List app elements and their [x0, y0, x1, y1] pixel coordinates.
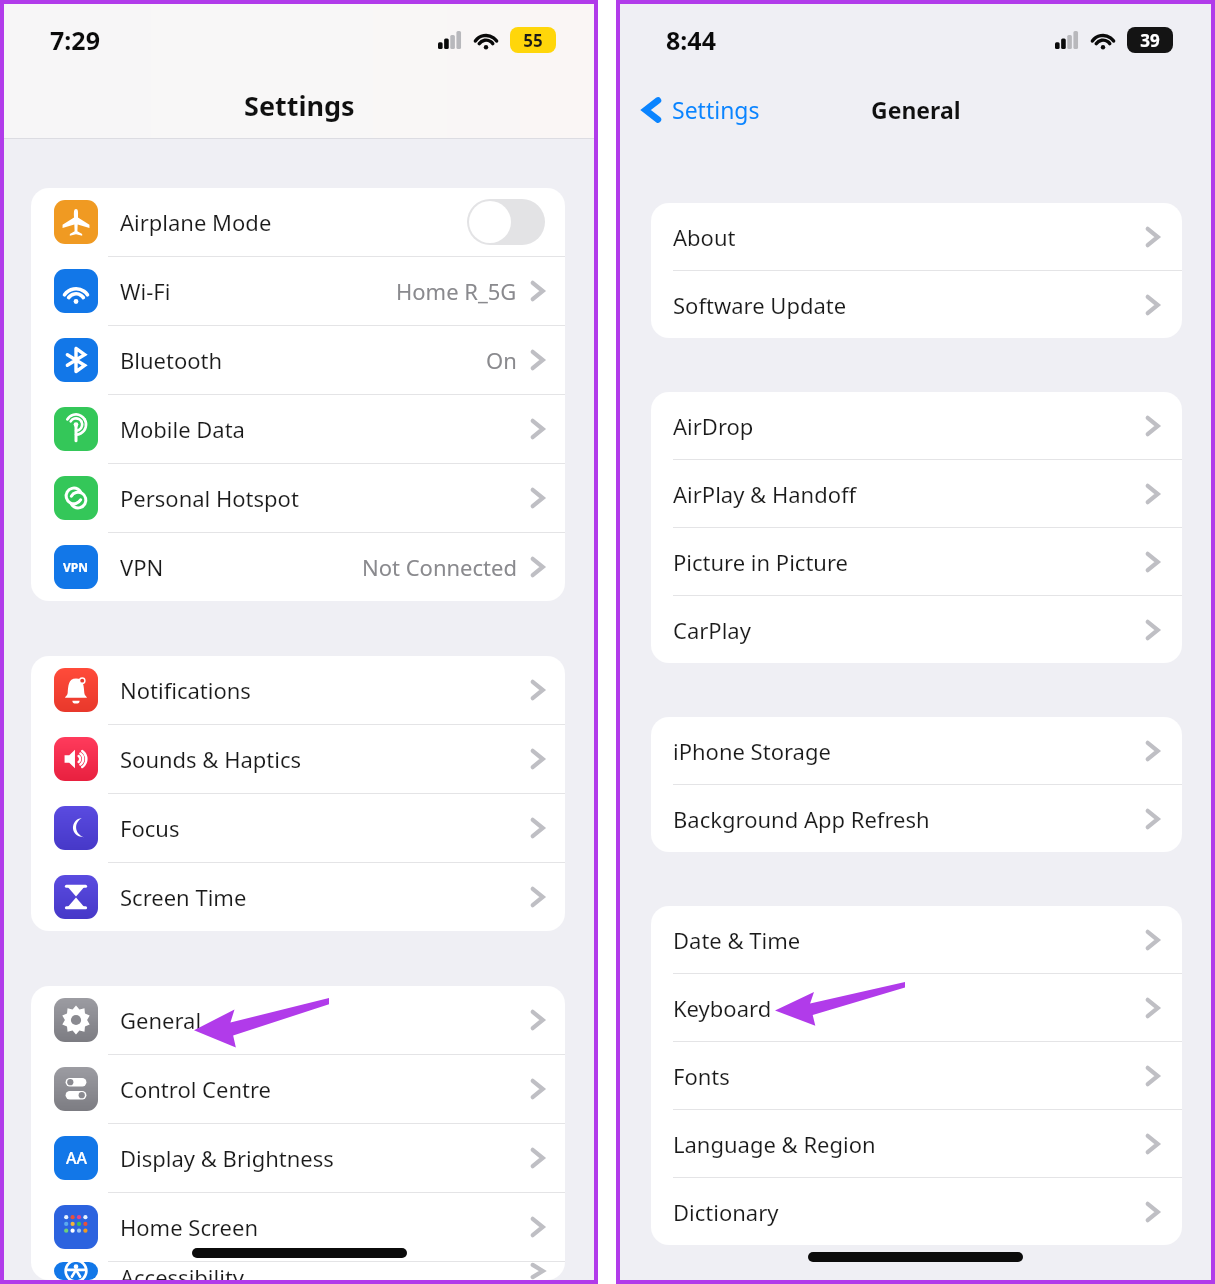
button[interactable]: Mobile Data — [31, 395, 565, 463]
staticText: Not Connected — [362, 552, 517, 582]
button[interactable]: General — [31, 986, 565, 1054]
staticText: Date & Time — [673, 925, 801, 955]
staticText: Accessibility — [120, 1262, 245, 1280]
staticText: 39 — [1140, 29, 1160, 52]
staticText: Picture in Picture — [673, 547, 848, 577]
button[interactable]: Airplane Mode toggle — [467, 199, 545, 245]
staticText: Display & Brightness — [120, 1143, 334, 1173]
staticText: Dictionary — [673, 1197, 779, 1227]
button[interactable]: AirDrop — [651, 392, 1182, 459]
staticText: About — [673, 222, 736, 252]
staticText: AirDrop — [673, 411, 754, 441]
staticText: VPN — [120, 552, 164, 582]
button[interactable]: Picture in Picture — [651, 528, 1182, 595]
button[interactable]: Personal Hotspot — [31, 464, 565, 532]
staticText: General — [871, 94, 961, 125]
button[interactable]: Language & Region — [651, 1110, 1182, 1177]
staticText: Settings — [672, 94, 760, 125]
button[interactable]: VPN — [31, 533, 565, 601]
button[interactable]: Dictionary — [651, 1178, 1182, 1245]
button[interactable]: Notifications — [31, 656, 565, 724]
staticText: General — [120, 1005, 202, 1035]
button[interactable]: AA — [31, 1124, 565, 1192]
staticText: AirPlay & Handoff — [673, 479, 857, 509]
button[interactable]: Screen Time — [31, 863, 565, 931]
button[interactable]: Home Screen — [31, 1193, 565, 1261]
button[interactable]: Settings — [638, 88, 764, 131]
staticText: Personal Hotspot — [120, 483, 299, 513]
staticText: Bluetooth — [120, 345, 223, 375]
staticText: Sounds & Haptics — [120, 744, 302, 774]
button[interactable]: Software Update — [651, 271, 1182, 338]
staticText: Airplane Mode — [120, 207, 272, 237]
staticText: Wi-Fi — [120, 276, 171, 306]
button[interactable]: Airplane Mode — [31, 188, 565, 256]
button[interactable]: CarPlay — [651, 596, 1182, 663]
staticText: AA — [66, 1147, 87, 1169]
staticText: On — [486, 345, 517, 375]
button[interactable]: AirPlay & Handoff — [651, 460, 1182, 527]
staticText: CarPlay — [673, 615, 751, 645]
staticText: Screen Time — [120, 882, 247, 912]
staticText: Language & Region — [673, 1129, 876, 1159]
staticText: 8:44 — [666, 23, 716, 57]
staticText: Home Screen — [120, 1212, 259, 1242]
button[interactable]: iPhone Storage — [651, 717, 1182, 784]
button[interactable]: Wi-Fi — [31, 257, 565, 325]
staticText: Keyboard — [673, 993, 772, 1023]
button[interactable]: Accessibility — [31, 1262, 565, 1280]
staticText: Software Update — [673, 290, 847, 320]
staticText: VPN — [63, 559, 89, 575]
staticText: Fonts — [673, 1061, 730, 1091]
staticText: Mobile Data — [120, 414, 245, 444]
staticText: Settings — [244, 87, 355, 124]
staticText: iPhone Storage — [673, 736, 831, 766]
button[interactable]: Bluetooth — [31, 326, 565, 394]
staticText: Notifications — [120, 675, 251, 705]
button[interactable]: Focus — [31, 794, 565, 862]
button[interactable]: Sounds & Haptics — [31, 725, 565, 793]
button[interactable]: Control Centre — [31, 1055, 565, 1123]
button[interactable]: Background App Refresh — [651, 785, 1182, 852]
staticText: 55 — [523, 29, 543, 52]
button[interactable]: Keyboard — [651, 974, 1182, 1041]
button[interactable]: Fonts — [651, 1042, 1182, 1109]
staticText: Focus — [120, 813, 180, 843]
staticText: Background App Refresh — [673, 804, 930, 834]
button[interactable]: Date & Time — [651, 906, 1182, 973]
staticText: Home R_5G — [396, 276, 517, 306]
button[interactable]: About — [651, 203, 1182, 270]
staticText: Control Centre — [120, 1074, 272, 1104]
staticText: 7:29 — [50, 23, 100, 57]
